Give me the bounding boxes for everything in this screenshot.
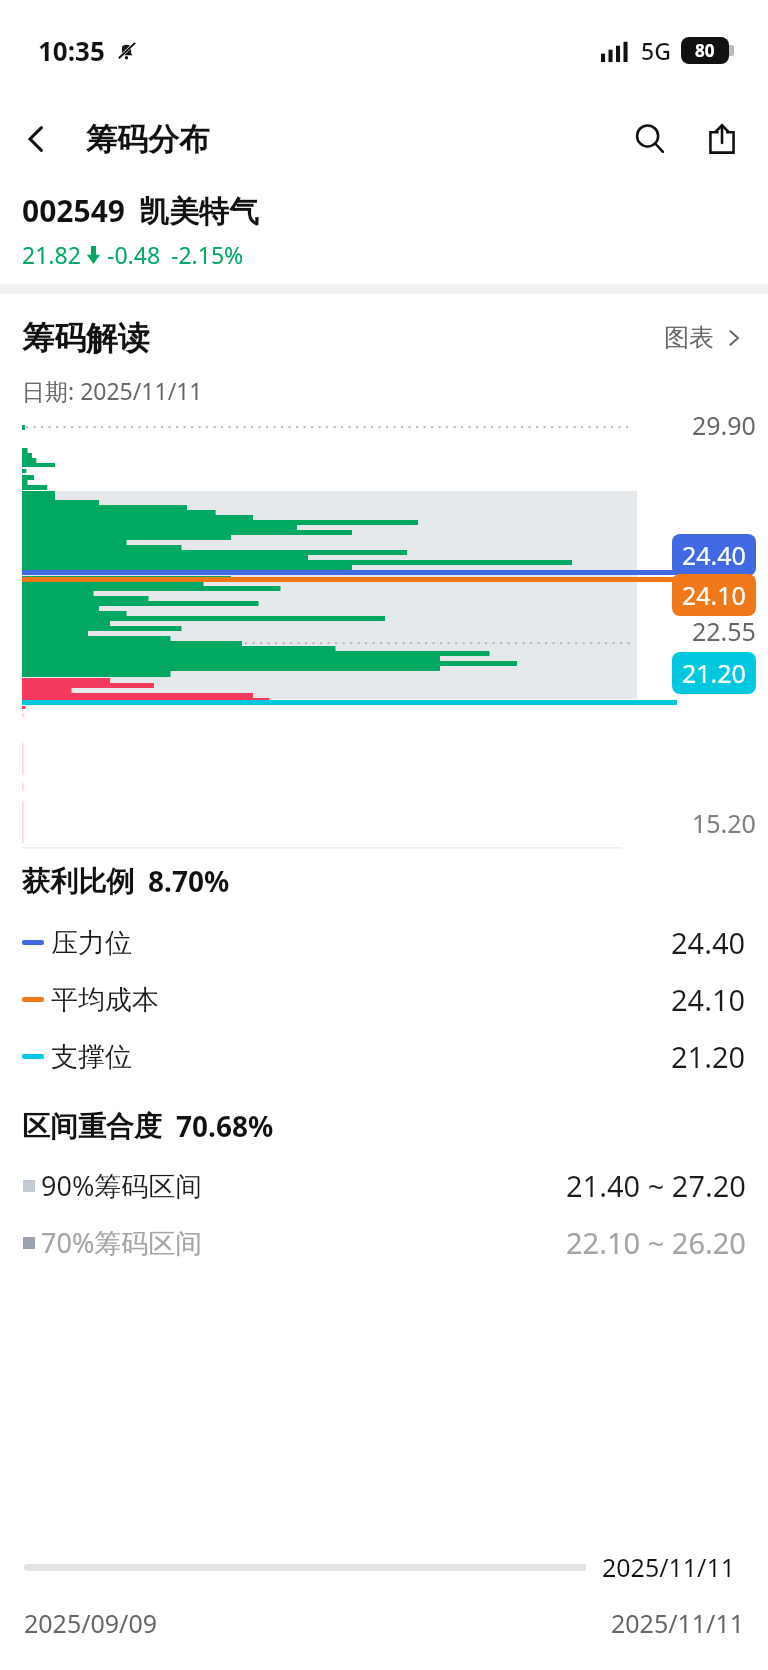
- button[interactable]: 2025/11/11: [0, 1532, 768, 1602]
- staticText: 8.70%: [148, 862, 230, 900]
- staticText: 70.68%: [176, 1107, 274, 1145]
- button[interactable]: Share: [686, 103, 758, 175]
- button[interactable]: Back: [0, 103, 72, 175]
- button[interactable]: Search: [614, 103, 686, 175]
- button[interactable]: 压力位: [22, 914, 746, 971]
- staticText: 24.10: [682, 578, 746, 612]
- staticText: 区间重合度: [22, 1109, 162, 1144]
- staticText: 70%筹码区间: [41, 1224, 203, 1261]
- staticText: -0.48: [107, 239, 161, 270]
- staticText: 支撑位: [51, 1040, 132, 1074]
- staticText: 21.20: [671, 1037, 746, 1076]
- staticText: 15.20: [692, 806, 756, 836]
- staticText: 80: [695, 39, 715, 62]
- button[interactable]: 图表: [660, 316, 748, 359]
- staticText: 压力位: [51, 926, 132, 960]
- staticText: 10:35: [38, 33, 105, 68]
- button[interactable]: 90%筹码区间: [22, 1157, 746, 1214]
- staticText: 21.40 ~ 27.20: [566, 1166, 746, 1205]
- staticText: 图表: [664, 322, 714, 353]
- staticText: 24.10: [671, 980, 746, 1019]
- staticText: 获利比例: [22, 864, 134, 899]
- button[interactable]: 平均成本: [22, 971, 746, 1028]
- staticText: 22.55: [692, 614, 756, 648]
- staticText: 5G: [641, 35, 671, 66]
- staticText: 22.10 ~ 26.20: [566, 1223, 746, 1262]
- staticText: 2025/11/11: [610, 1606, 744, 1640]
- staticText: 21.82: [22, 239, 81, 270]
- staticText: 筹码解读: [22, 318, 150, 358]
- staticText: 90%筹码区间: [41, 1167, 203, 1204]
- staticText: 日期: 2025/11/11: [22, 375, 203, 406]
- staticText: 002549: [22, 190, 125, 231]
- staticText: 21.20: [682, 656, 746, 690]
- staticText: -2.15%: [171, 239, 244, 270]
- staticText: 2025/11/11: [602, 1550, 736, 1584]
- staticText: 24.40: [671, 923, 746, 962]
- staticText: 24.40: [682, 538, 746, 572]
- button[interactable]: 支撑位: [22, 1028, 746, 1085]
- staticText: 2025/09/09: [24, 1606, 158, 1640]
- button[interactable]: 70%筹码区间: [22, 1214, 746, 1271]
- staticText: 平均成本: [51, 983, 159, 1017]
- staticText: 筹码分布: [86, 120, 210, 159]
- staticText: 29.90: [692, 408, 756, 442]
- staticText: 凯美特气: [139, 193, 259, 231]
